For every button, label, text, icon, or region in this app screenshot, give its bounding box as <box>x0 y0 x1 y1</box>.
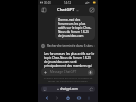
button[interactable]: Tabs <box>43 87 47 91</box>
staticText: 4 <box>44 88 46 91</box>
staticText: Recherche terminée dans 6 sites <box>47 44 93 48</box>
staticText: Les forumeurs les plus actifs sur le top… <box>44 52 95 68</box>
button[interactable]: Home <box>64 94 72 102</box>
button[interactable]: Attach file <box>43 70 48 75</box>
button[interactable]: Open sidebar <box>41 7 47 13</box>
staticText: ChatGPT <box>57 7 75 13</box>
button[interactable]: Tabs <box>41 86 95 92</box>
button[interactable]: Forward <box>53 94 61 102</box>
staticText: 14:12 <box>64 1 72 5</box>
button[interactable]: ChatGPT <box>55 6 81 14</box>
button[interactable]: Voice input <box>88 70 93 75</box>
button[interactable]: Recherche terminée dans 6 sites <box>41 43 95 49</box>
button[interactable]: Menu <box>85 94 93 102</box>
staticText: Donne-moi des forumeurs les plus actifs … <box>58 18 92 38</box>
staticText: chatgpt.com <box>60 87 78 91</box>
button[interactable]: Back <box>43 94 51 102</box>
button[interactable]: Attach file <box>41 68 95 76</box>
button[interactable]: New chat <box>89 7 95 13</box>
staticText: Message ChatGPT <box>50 70 88 74</box>
button[interactable]: Donne-moi des forumeurs les plus actifs … <box>55 16 95 40</box>
button[interactable]: Tabs <box>75 94 83 102</box>
staticText: 00:00 <box>44 1 51 5</box>
staticText: ChatGPT peut faire des erreurs. Envisage… <box>42 77 94 83</box>
button[interactable]: Reload page <box>89 87 93 91</box>
